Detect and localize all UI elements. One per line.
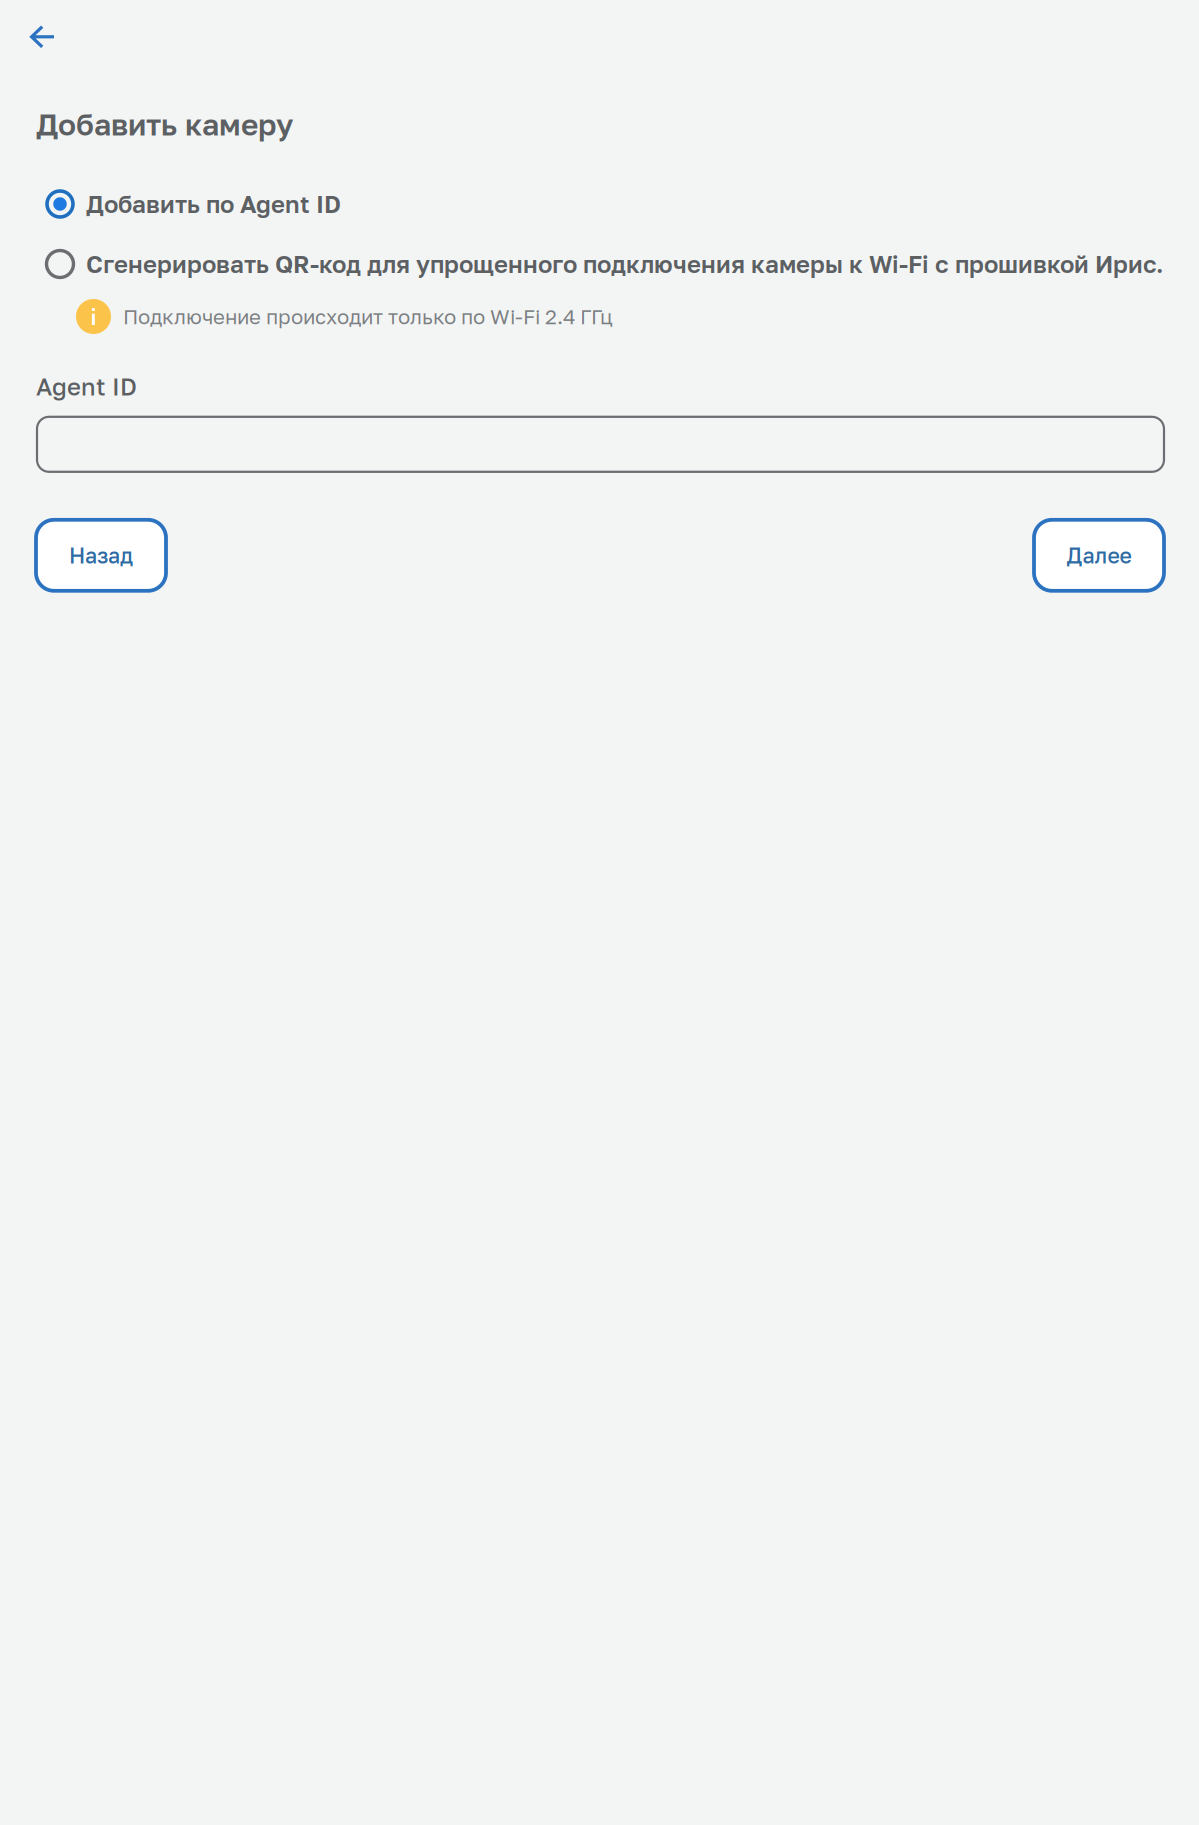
button[interactable]: Добавить по Agent ID <box>0 142 341 219</box>
button[interactable]: Назад <box>0 0 73 67</box>
staticText: Сгенерировать QR-код для упрощенного под… <box>86 250 1163 278</box>
staticText: Подключение происходит только по Wi-Fi 2… <box>123 304 613 329</box>
button[interactable]: Назад <box>36 520 166 591</box>
button[interactable]: Далее <box>1034 520 1164 591</box>
staticText: Далее <box>1066 542 1131 568</box>
staticText: Назад <box>69 542 133 568</box>
staticText: Добавить по Agent ID <box>86 190 341 218</box>
staticText: Добавить камеру <box>36 106 293 142</box>
button[interactable]: Сгенерировать QR-код для упрощенного под… <box>0 219 1163 279</box>
staticText: Agent ID <box>36 372 137 401</box>
